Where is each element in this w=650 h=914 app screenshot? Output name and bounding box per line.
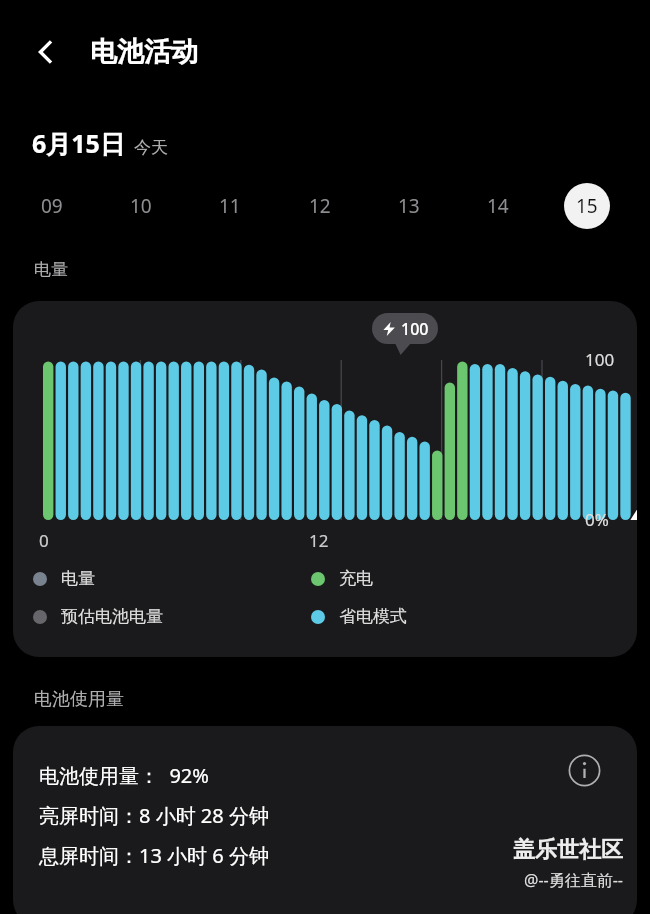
staticText: 10 — [130, 193, 152, 219]
staticText: 电池活动 — [90, 35, 198, 69]
staticText: 13 — [398, 193, 420, 219]
staticText: 14 — [487, 193, 509, 219]
button[interactable]: 电池使用量： 92% — [13, 726, 637, 914]
staticText: 0 — [39, 529, 49, 552]
staticText: 电池使用量： 92% — [39, 762, 209, 789]
staticText: 0% — [585, 508, 609, 531]
staticText: 100 — [585, 348, 615, 371]
staticText: 15 — [576, 193, 598, 219]
button[interactable]: 省电模式 — [311, 606, 407, 627]
button[interactable]: 充电 — [311, 568, 373, 589]
staticText: 12 — [309, 193, 331, 219]
staticText: 充电 — [339, 568, 373, 589]
staticText: 电量 — [34, 259, 68, 280]
staticText: 09 — [41, 193, 63, 219]
button[interactable]: 14 — [475, 183, 521, 229]
staticText: 电量 — [61, 568, 95, 589]
staticText: 电池使用量 — [34, 688, 124, 711]
staticText: 预估电池电量 — [61, 606, 163, 627]
staticText: 亮屏时间：8 小时 28 分钟 — [39, 802, 269, 829]
staticText: @--勇往直前-- — [524, 869, 623, 891]
button[interactable]: 11 — [207, 183, 253, 229]
button[interactable]: 15 — [564, 183, 610, 229]
button[interactable]: 100 — [13, 301, 637, 657]
staticText: 息屏时间：13 小时 6 分钟 — [39, 842, 269, 869]
staticText: 盖乐世社区 — [513, 836, 623, 864]
staticText: 6月15日 — [32, 126, 125, 160]
button[interactable]: 电量 — [33, 568, 95, 589]
button[interactable]: 09 — [29, 183, 75, 229]
staticText: 12 — [309, 529, 329, 552]
button[interactable]: Back — [20, 26, 72, 78]
staticText: 今天 — [134, 137, 168, 158]
staticText: 11 — [219, 193, 241, 219]
staticText: 省电模式 — [339, 606, 407, 627]
button[interactable]: 13 — [386, 183, 432, 229]
staticText: 100 — [401, 318, 429, 340]
button[interactable]: 12 — [297, 183, 343, 229]
button[interactable]: 10 — [118, 183, 164, 229]
button[interactable]: Information — [562, 748, 606, 792]
button[interactable]: 预估电池电量 — [33, 606, 163, 627]
